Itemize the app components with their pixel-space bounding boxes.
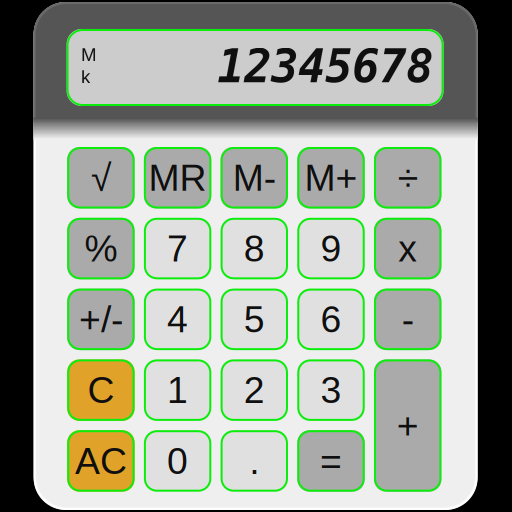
button[interactable]: . xyxy=(221,430,288,492)
staticText: + xyxy=(397,405,419,446)
button[interactable]: % xyxy=(67,218,135,279)
staticText: M xyxy=(81,44,97,65)
button[interactable]: = xyxy=(297,430,365,492)
staticText: . xyxy=(249,440,259,482)
staticText: 5 xyxy=(244,298,265,340)
button[interactable]: 3 xyxy=(297,359,365,421)
button[interactable]: MR xyxy=(144,147,211,208)
button[interactable]: + xyxy=(374,359,441,492)
button[interactable]: M- xyxy=(221,147,288,208)
staticText: 4 xyxy=(167,298,188,340)
staticText: 7 xyxy=(167,228,188,269)
staticText: 1 xyxy=(167,369,188,411)
button[interactable]: 6 xyxy=(297,289,365,350)
button[interactable]: ÷ xyxy=(374,147,441,208)
staticText: ÷ xyxy=(398,157,418,199)
button[interactable]: x xyxy=(374,218,441,279)
button[interactable]: M+ xyxy=(297,147,365,208)
staticText: - xyxy=(402,298,414,340)
button[interactable]: 5 xyxy=(221,289,288,350)
staticText: C xyxy=(87,369,114,411)
staticText: x xyxy=(398,228,417,269)
button[interactable]: 2 xyxy=(221,359,288,421)
button[interactable]: √ xyxy=(67,147,135,208)
button[interactable]: 4 xyxy=(144,289,211,350)
button[interactable]: - xyxy=(374,289,441,350)
button[interactable]: AC xyxy=(67,430,135,492)
staticText: AC xyxy=(75,440,127,482)
button[interactable]: 0 xyxy=(144,430,211,492)
staticText: 2 xyxy=(244,369,265,411)
staticText: √ xyxy=(91,157,111,199)
staticText: 8 xyxy=(244,228,265,269)
staticText: 0 xyxy=(167,440,188,482)
button[interactable]: 8 xyxy=(221,218,288,279)
staticText: M- xyxy=(233,157,276,199)
button[interactable]: C xyxy=(67,359,135,421)
staticText: 6 xyxy=(320,298,341,340)
staticText: 12345678 xyxy=(217,40,433,93)
button[interactable]: 9 xyxy=(297,218,365,279)
button[interactable]: 1 xyxy=(144,359,211,421)
staticText: % xyxy=(84,228,117,269)
staticText: 9 xyxy=(320,228,341,269)
button[interactable]: 7 xyxy=(144,218,211,279)
staticText: 3 xyxy=(320,369,341,411)
staticText: M+ xyxy=(304,157,357,199)
staticText: +/- xyxy=(79,298,123,340)
staticText: = xyxy=(320,440,342,482)
staticText: k xyxy=(81,66,90,87)
button[interactable]: +/- xyxy=(67,289,135,350)
staticText: MR xyxy=(149,157,207,199)
